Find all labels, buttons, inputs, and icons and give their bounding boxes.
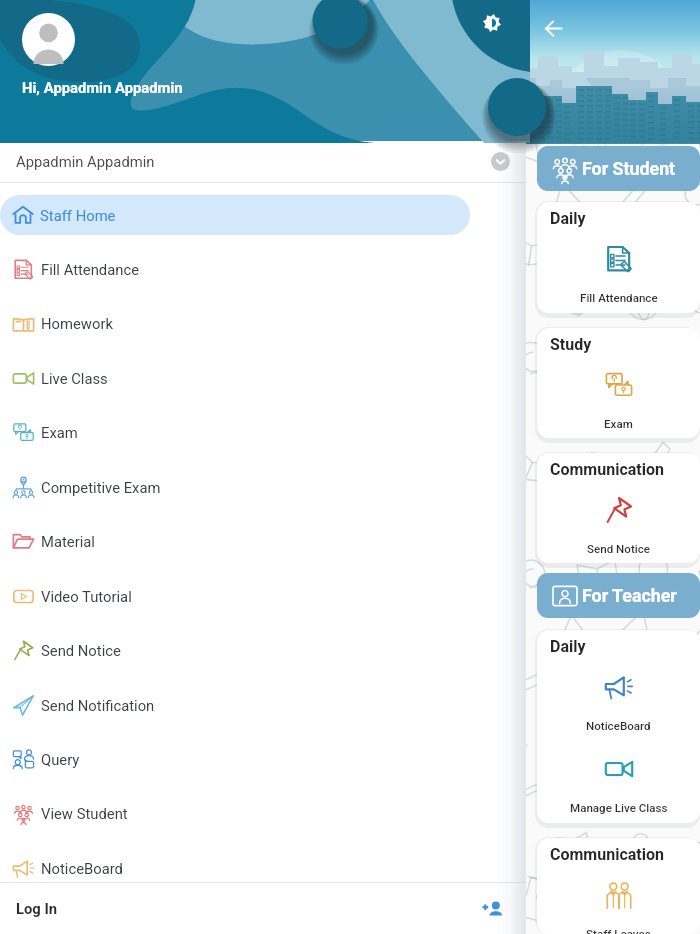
staticText: For Student xyxy=(582,158,676,179)
button[interactable]: NoticeBoard xyxy=(0,841,526,882)
button[interactable]: For Student xyxy=(537,146,700,191)
button[interactable]: Video Tutorial xyxy=(0,569,526,623)
button[interactable]: Competitive Exam xyxy=(0,460,526,514)
button[interactable]: Material xyxy=(0,514,526,569)
staticText: Query xyxy=(41,751,80,768)
button[interactable]: Staff Home xyxy=(0,195,470,235)
staticText: Send Notification xyxy=(41,697,155,714)
button[interactable]: Exam xyxy=(537,370,700,431)
button[interactable]: Communication xyxy=(537,453,700,563)
button[interactable]: Log In xyxy=(0,883,526,934)
staticText: Send Notice xyxy=(41,642,121,659)
staticText: Communication xyxy=(550,845,664,864)
staticText: Staff Home xyxy=(40,207,116,224)
button[interactable]: Send Notification xyxy=(0,678,526,732)
staticText: For Teacher xyxy=(582,585,677,606)
button[interactable]: For Teacher xyxy=(537,573,700,618)
button[interactable]: Communication xyxy=(537,838,700,934)
button[interactable]: Manage Live Class xyxy=(537,754,700,815)
button[interactable]: Daily xyxy=(537,630,700,823)
button[interactable]: Query xyxy=(0,732,526,786)
staticText: Live Class xyxy=(41,370,108,387)
button[interactable]: Exam xyxy=(0,405,526,460)
button[interactable]: Study xyxy=(537,328,700,438)
staticText: Fill Attendance xyxy=(41,261,140,278)
button[interactable]: View Student xyxy=(0,786,526,841)
button[interactable]: Back xyxy=(536,11,570,45)
button[interactable]: Live Class xyxy=(0,351,526,405)
button[interactable]: Send Notice xyxy=(537,495,700,556)
staticText: Daily xyxy=(550,637,586,656)
staticText: Video Tutorial xyxy=(41,588,132,605)
button[interactable]: NoticeBoard xyxy=(537,672,700,733)
staticText: Competitive Exam xyxy=(41,479,161,496)
button[interactable]: Homework xyxy=(0,296,526,351)
staticText: Hi, Appadmin Appadmin xyxy=(22,79,183,96)
staticText: Fill Attendance xyxy=(580,291,658,305)
staticText: Exam xyxy=(41,424,78,441)
staticText: Manage Live Class xyxy=(570,801,668,815)
staticText: Appadmin Appadmin xyxy=(16,153,155,170)
staticText: View Student xyxy=(41,805,128,822)
button[interactable]: Fill Attendance xyxy=(537,244,700,305)
button[interactable]: Toggle theme xyxy=(475,6,509,40)
staticText: Exam xyxy=(604,417,633,431)
button[interactable]: Send Notice xyxy=(0,623,526,678)
staticText: NoticeBoard xyxy=(586,719,651,733)
staticText: Material xyxy=(41,533,95,550)
button[interactable]: Staff Leaves xyxy=(537,880,700,934)
staticText: Log In xyxy=(16,900,58,917)
staticText: Study xyxy=(550,335,592,354)
staticText: Homework xyxy=(41,315,113,332)
button[interactable]: Daily xyxy=(537,202,700,313)
staticText: Daily xyxy=(550,209,586,228)
staticText: Staff Leaves xyxy=(586,927,651,934)
button[interactable]: Fill Attendance xyxy=(0,242,526,296)
button[interactable]: Appadmin Appadmin xyxy=(0,141,526,182)
staticText: Send Notice xyxy=(587,542,650,556)
staticText: NoticeBoard xyxy=(41,860,123,877)
staticText: Communication xyxy=(550,460,664,479)
